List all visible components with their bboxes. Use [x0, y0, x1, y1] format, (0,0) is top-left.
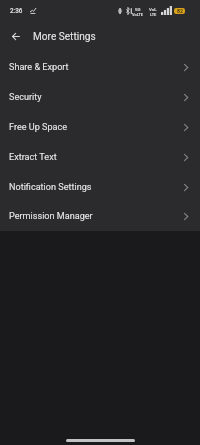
staticText: Share & Export	[9, 62, 69, 73]
button[interactable]: Notification Settings	[0, 172, 200, 202]
staticText: 2:36	[10, 7, 23, 14]
button[interactable]: Free Up Space	[0, 112, 200, 142]
staticText: More Settings	[33, 31, 96, 43]
staticText: VoLTE	[132, 12, 144, 17]
staticText: 5G	[135, 7, 141, 12]
button[interactable]: Extract Text	[0, 142, 200, 172]
button[interactable]: Permission Manager	[0, 202, 200, 231]
button[interactable]: Back	[0, 21, 32, 52]
button[interactable]: Share & Export	[0, 52, 200, 82]
button[interactable]: Security	[0, 82, 200, 112]
staticText: LTE	[150, 12, 157, 17]
staticText: 82	[177, 8, 183, 14]
staticText: Permission Manager	[9, 211, 93, 222]
staticText: Notification Settings	[9, 182, 92, 193]
staticText: VoL	[149, 7, 157, 12]
staticText: Extract Text	[9, 152, 57, 163]
staticText: Security	[9, 92, 42, 103]
staticText: Free Up Space	[9, 122, 68, 133]
